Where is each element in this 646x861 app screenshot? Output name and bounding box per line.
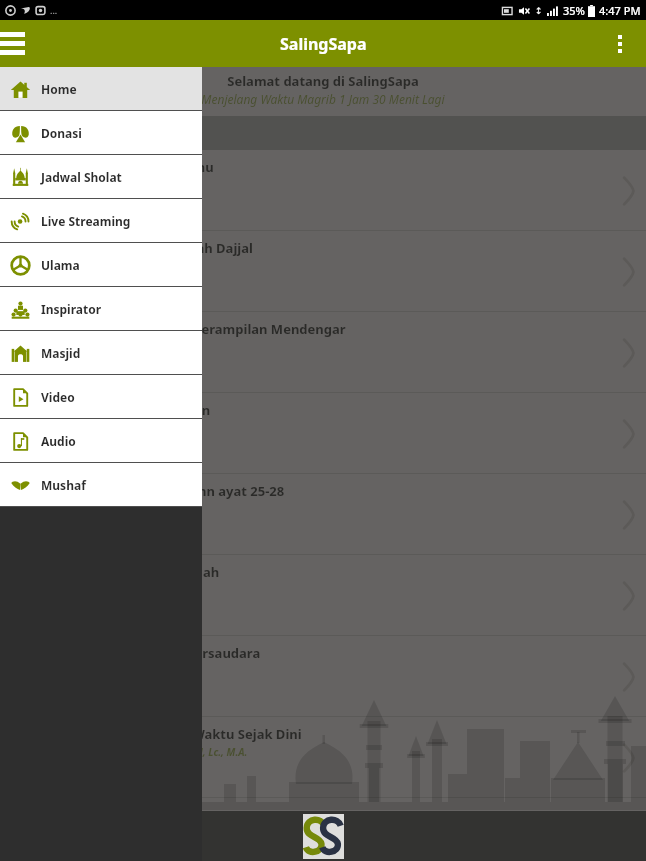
- staticText: Live Streaming: [41, 213, 131, 229]
- button[interactable]: Sesama Muslim Itu Semua Bersaudara: [0, 636, 646, 717]
- button[interactable]: Bersikap Adil dalam Pergaulan: [0, 393, 646, 474]
- button[interactable]: Jadwal Sholat: [0, 155, 202, 199]
- staticText: Tanda-tanda Munculnya Fitnah Dajjal: [12, 239, 253, 257]
- staticText: Donasi: [41, 125, 82, 141]
- button[interactable]: Melatih Anak Agar Punya Keterampilan Men…: [0, 312, 646, 393]
- staticText: Oleh Ustadz Muhammad Abduh Tuasikal, Lc.…: [12, 745, 248, 759]
- button[interactable]: Home: [0, 67, 202, 111]
- button[interactable]: Video: [0, 375, 202, 419]
- button[interactable]: Masjid: [0, 331, 202, 375]
- staticText: ↕: [535, 6, 543, 16]
- staticText: Video: [41, 389, 75, 405]
- staticText: 35%: [563, 3, 585, 18]
- button[interactable]: Mendidik Anak Sholat Lima Waktu Sejak Di…: [0, 717, 646, 798]
- button[interactable]: Tafsir Ringkas dari Surat Al-Jinn ayat 2…: [0, 474, 646, 555]
- button[interactable]: Mushaf: [0, 463, 202, 507]
- staticText: Ulama: [41, 257, 80, 273]
- staticText: Inilah Judul Artikel Pertamamu: [12, 158, 214, 176]
- staticText: Bertawakal Hanya Kepada Allah: [12, 563, 220, 581]
- button[interactable]: Open navigation drawer: [0, 20, 34, 67]
- button[interactable]: Live Streaming: [0, 199, 202, 243]
- button[interactable]: Bertawakal Hanya Kepada Allah: [0, 555, 646, 636]
- staticText: Selamat datang di SalingSapa: [227, 72, 419, 90]
- staticText: Tafsir Ringkas dari Surat Al-Jinn ayat 2…: [12, 482, 285, 500]
- button[interactable]: Audio: [0, 419, 202, 463]
- staticText: Audio: [41, 433, 76, 449]
- staticText: Home: [41, 81, 77, 97]
- button[interactable]: More options: [602, 26, 638, 62]
- button[interactable]: Inspirator: [0, 287, 202, 331]
- button[interactable]: Ulama: [0, 243, 202, 287]
- button[interactable]: Donasi: [0, 111, 202, 155]
- button[interactable]: SalingSapa logo: [303, 814, 344, 859]
- button[interactable]: Tanda-tanda Munculnya Fitnah Dajjal: [0, 231, 646, 312]
- staticText: Menjelang Waktu Magrib 1 Jam 30 Menit La…: [201, 91, 445, 107]
- staticText: Masjid: [41, 345, 81, 361]
- staticText: Inspirator: [41, 301, 102, 317]
- staticText: ...: [50, 4, 58, 16]
- staticText: SalingSapa: [280, 33, 367, 55]
- staticText: Mendidik Anak Sholat Lima Waktu Sejak Di…: [12, 725, 302, 743]
- staticText: 4:47 PM: [599, 3, 641, 18]
- button[interactable]: Inilah Judul Artikel Pertamamu: [0, 150, 646, 231]
- staticText: Sesama Muslim Itu Semua Bersaudara: [12, 644, 261, 662]
- staticText: Mushaf: [41, 477, 86, 493]
- staticText: Melatih Anak Agar Punya Keterampilan Men…: [12, 320, 346, 338]
- staticText: Jadwal Sholat: [41, 169, 122, 185]
- staticText: Bersikap Adil dalam Pergaulan: [12, 401, 211, 419]
